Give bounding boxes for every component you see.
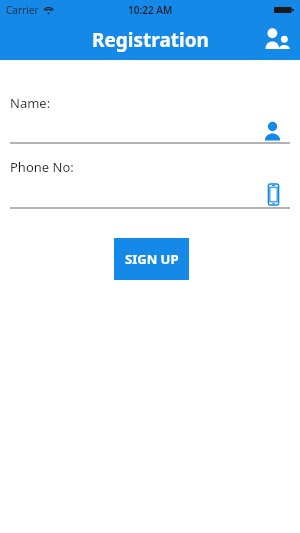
staticText: Registration (92, 27, 209, 53)
button[interactable]: Contacts (260, 23, 294, 57)
button[interactable] (10, 176, 290, 207)
staticText: Carrier (6, 3, 39, 17)
staticText: Name: (10, 94, 51, 112)
staticText: SIGN UP (125, 250, 179, 268)
staticText: 10:22 AM (128, 3, 173, 17)
button[interactable]: SIGN UP (114, 238, 189, 280)
button[interactable] (10, 112, 290, 142)
staticText: Phone No: (10, 158, 74, 176)
